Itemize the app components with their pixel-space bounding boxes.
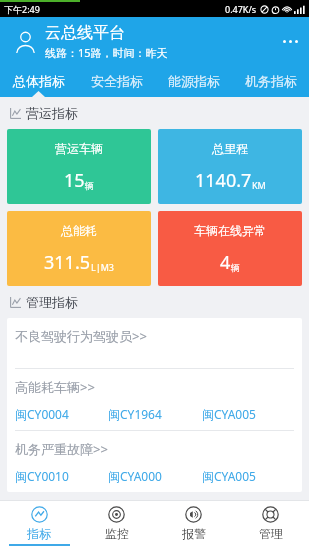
button[interactable]: 指标 [0, 501, 78, 550]
button[interactable]: 能源指标 [155, 65, 232, 97]
button[interactable]: 不良驾驶行为驾驶员>> [7, 318, 302, 369]
staticText: 机务严重故障>> [15, 440, 108, 458]
staticText: KM [252, 179, 266, 191]
staticText: 管理 [259, 526, 283, 541]
staticText: 线路：15路，时间：昨天 [45, 45, 168, 60]
staticText: 总体指标 [13, 73, 65, 89]
button[interactable]: 总体指标 [0, 65, 78, 97]
staticText: 机务指标 [245, 73, 297, 89]
staticText: 营运车辆 [55, 141, 103, 156]
staticText: 能源指标 [168, 73, 220, 89]
button[interactable]: 安全指标 [78, 65, 155, 97]
button[interactable]: 营运车辆 [7, 129, 151, 204]
staticText: 车辆在线异常 [194, 223, 266, 238]
staticText: 辆 [85, 180, 94, 191]
staticText: L|M3 [91, 261, 114, 273]
button[interactable]: Account [8, 24, 42, 58]
button[interactable]: 高能耗车辆>> [7, 369, 302, 431]
staticText: 管理指标 [26, 294, 78, 310]
button[interactable]: 机务指标 [232, 65, 309, 97]
staticText: 311.5 [44, 250, 91, 275]
staticText: 闽CY1964 [108, 406, 162, 422]
staticText: 1140.7 [195, 168, 252, 193]
button[interactable]: 报警 [155, 501, 232, 550]
staticText: 高能耗车辆>> [15, 378, 95, 396]
staticText: 闽CY0004 [15, 406, 69, 422]
staticText: 报警 [182, 526, 206, 541]
staticText: 4 [220, 250, 231, 275]
button[interactable]: 车辆在线异常 [158, 211, 302, 286]
button[interactable]: 机务严重故障>> [7, 431, 302, 492]
staticText: 营运指标 [26, 105, 78, 121]
staticText: 0.47K/s [225, 3, 257, 15]
staticText: 监控 [105, 526, 129, 541]
button[interactable]: 总能耗 [7, 211, 151, 286]
staticText: 15 [64, 168, 85, 193]
button[interactable]: 总里程 [158, 129, 302, 204]
staticText: 辆 [231, 262, 240, 273]
staticText: 安全指标 [91, 73, 143, 89]
button[interactable]: More options [271, 22, 309, 60]
staticText: 总能耗 [61, 223, 97, 238]
staticText: 下午2:49 [4, 3, 40, 15]
staticText: 闽CYA005 [202, 406, 256, 422]
staticText: 闽CYA005 [202, 468, 256, 484]
button[interactable]: 监控 [78, 501, 155, 550]
staticText: 云总线平台 [45, 23, 125, 43]
staticText: 总里程 [212, 141, 248, 156]
button[interactable]: 管理 [232, 501, 309, 550]
staticText: 指标 [27, 526, 51, 541]
staticText: 闽CY0010 [15, 468, 69, 484]
staticText: 不良驾驶行为驾驶员>> [15, 327, 147, 345]
staticText: 闽CYA000 [108, 468, 162, 484]
